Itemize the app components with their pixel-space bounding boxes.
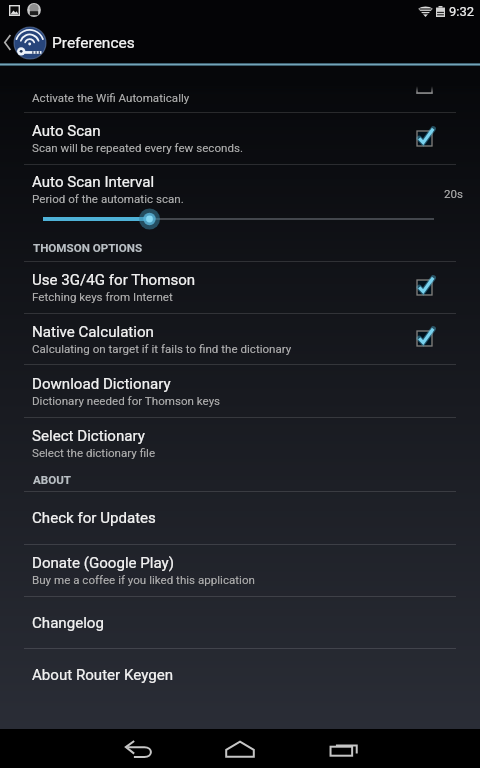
button[interactable]: Donate (Google Play) <box>0 545 480 596</box>
staticText: 9:32 <box>449 4 475 19</box>
staticText: Check for Updates <box>32 509 156 527</box>
staticText: Dictionary needed for Thomson keys <box>32 394 221 408</box>
button[interactable]: Select Dictionary <box>0 418 480 469</box>
staticText: Scan will be repeated every few seconds. <box>32 141 243 155</box>
staticText: Select Dictionary <box>32 427 145 445</box>
staticText: Donate (Google Play) <box>32 554 174 572</box>
button[interactable]: Changelog <box>0 597 480 648</box>
staticText: Period of the automatic scan. <box>32 192 184 206</box>
button[interactable]: Download Dictionary <box>0 365 480 417</box>
button[interactable]: About Router Keygen <box>0 649 480 700</box>
button[interactable]: Use 3G/4G for Thomson <box>0 262 480 313</box>
button[interactable]: Check for Updates <box>0 492 480 544</box>
staticText: Activate the Wifi Automatically <box>32 91 190 105</box>
button[interactable]: Auto Scan Interval <box>0 165 480 230</box>
staticText: Changelog <box>32 614 104 632</box>
staticText: Auto Scan <box>32 122 101 140</box>
staticText: Download Dictionary <box>32 375 171 393</box>
staticText: Select the dictionary file <box>32 446 156 460</box>
staticText: Calculating on target if it fails to fin… <box>32 342 292 356</box>
button[interactable]: Back <box>103 729 173 768</box>
staticText: 20s <box>444 187 464 201</box>
staticText: THOMSON OPTIONS <box>33 241 143 255</box>
staticText: Fetching keys from Internet <box>32 290 173 304</box>
button[interactable]: Navigate up <box>0 22 46 63</box>
button[interactable]: Recent apps <box>308 729 378 768</box>
staticText: Buy me a coffee if you liked this applic… <box>32 573 255 587</box>
staticText: About Router Keygen <box>32 666 174 684</box>
button[interactable]: Auto Scan <box>0 113 480 164</box>
staticText: Native Calculation <box>32 323 154 341</box>
staticText: Use 3G/4G for Thomson <box>32 271 196 289</box>
staticText: ABOUT <box>33 473 72 487</box>
button[interactable]: Home <box>205 729 275 768</box>
staticText: Auto Scan Interval <box>32 173 155 191</box>
button[interactable]: Activate the Wifi Automatically <box>0 66 480 112</box>
staticText: Preferences <box>52 34 135 52</box>
button[interactable]: Native Calculation <box>0 314 480 364</box>
